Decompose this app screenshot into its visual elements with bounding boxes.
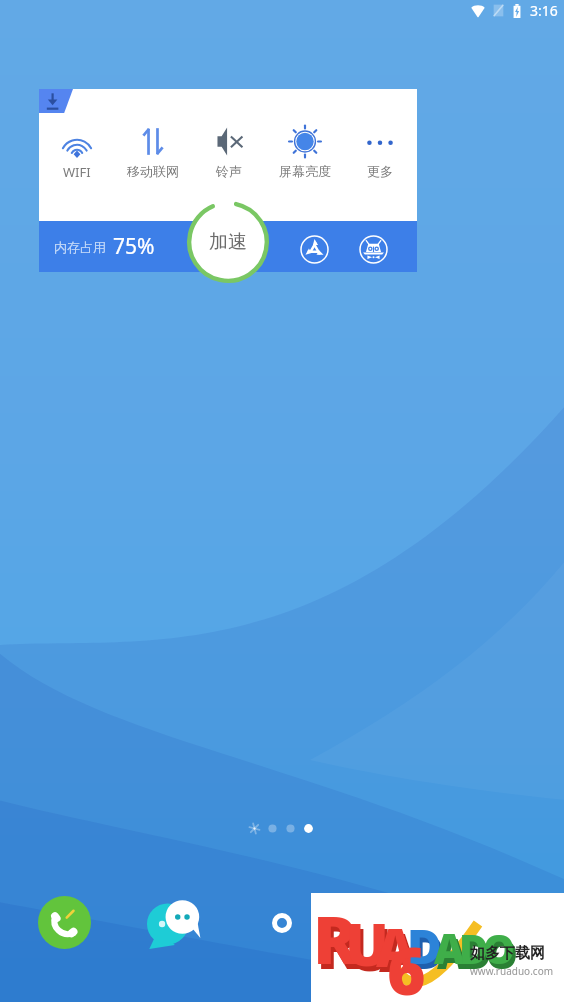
staticText: 75% [113, 232, 155, 261]
staticText: 屏幕亮度 [279, 163, 331, 179]
staticText: R [313, 893, 358, 983]
staticText: A [379, 915, 418, 987]
staticText: D [407, 914, 442, 978]
staticText: A [437, 924, 468, 981]
staticText: D [462, 926, 492, 980]
staticText: 内存占用 [54, 239, 106, 255]
button[interactable]: Clean up [300, 235, 329, 264]
staticText: www.ruaduo.com [470, 964, 554, 978]
staticText: O [486, 926, 518, 980]
staticText: A [376, 910, 415, 982]
staticText: 加速 [209, 230, 247, 254]
button[interactable]: 屏幕亮度 [267, 127, 343, 179]
staticText: U [348, 909, 392, 988]
staticText: D [410, 919, 445, 983]
staticText: R [316, 898, 361, 988]
button[interactable]: 铃声 [191, 127, 267, 179]
staticText: D [459, 921, 489, 975]
staticText: 如多下载网 [470, 944, 545, 963]
button[interactable]: Toolbox [359, 235, 388, 264]
staticText: O [483, 921, 515, 975]
staticText: 铃声 [216, 163, 242, 179]
staticText: 更多 [367, 163, 393, 179]
button[interactable]: WIFI [39, 127, 115, 181]
button[interactable]: Messages [147, 899, 205, 949]
button[interactable]: 更多 [343, 127, 417, 179]
staticText: 3:16 [530, 1, 558, 20]
staticText: WIFI [63, 163, 91, 181]
staticText: 6 [387, 924, 426, 1002]
button[interactable]: 加速 [187, 201, 269, 283]
staticText: 移动联网 [127, 163, 179, 179]
button[interactable]: All apps [268, 909, 296, 937]
staticText: A [434, 919, 465, 976]
staticText: U [345, 904, 389, 983]
button[interactable]: Phone [38, 896, 91, 949]
button[interactable]: 移动联网 [115, 127, 191, 179]
